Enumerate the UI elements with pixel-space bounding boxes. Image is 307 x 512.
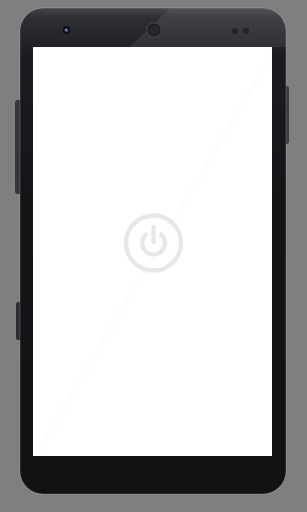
button[interactable]: Power — [120, 210, 186, 276]
